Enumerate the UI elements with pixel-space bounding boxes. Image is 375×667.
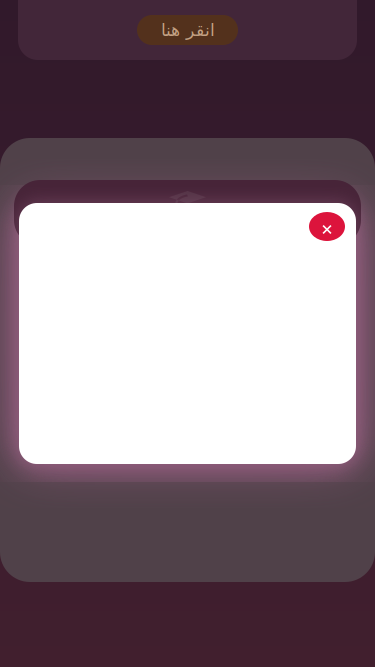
button[interactable]: Close (309, 212, 345, 241)
staticText: انقر هنا (160, 20, 214, 40)
button[interactable]: انقر هنا (137, 15, 238, 45)
